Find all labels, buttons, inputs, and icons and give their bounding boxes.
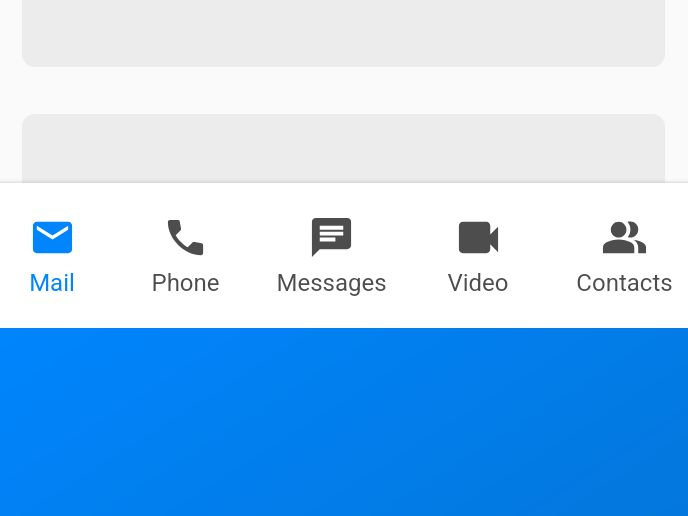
button[interactable]: Contacts [551, 183, 688, 328]
button[interactable]: Video [405, 183, 552, 328]
staticText: Phone [151, 269, 220, 297]
button[interactable]: List item [22, 114, 665, 214]
button[interactable]: Phone [119, 183, 259, 328]
staticText: Mail [29, 269, 75, 297]
button[interactable]: Mail [0, 183, 119, 328]
staticText: Contacts [576, 269, 673, 297]
button[interactable]: Messages [258, 183, 404, 328]
staticText: Video [447, 269, 509, 297]
staticText: Messages [276, 269, 387, 297]
